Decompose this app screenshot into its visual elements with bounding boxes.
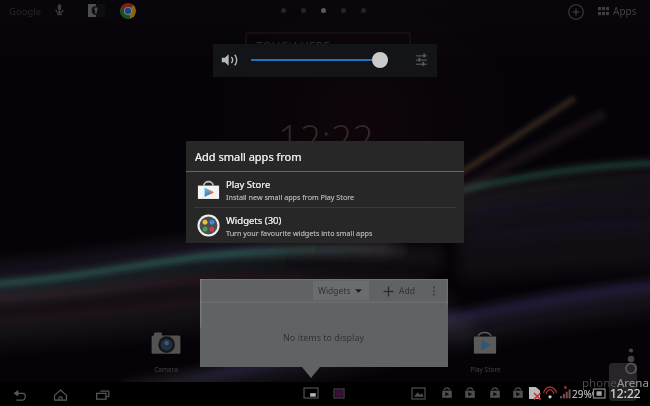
staticText: Add [399,285,415,297]
staticText: Google [9,5,42,18]
button[interactable]: Add [568,4,584,20]
button[interactable]: Google [9,0,42,22]
staticText: Camera [154,365,178,374]
button[interactable]: Widgets [313,281,369,300]
staticText: Apps [613,4,637,18]
staticText: No items to display [283,331,365,343]
button[interactable]: Sound settings [414,52,429,67]
button[interactable]: Volume [221,52,237,68]
staticText: Widgets [318,285,351,297]
staticText: Install new small apps from Play Store [226,192,355,202]
button[interactable]: Goggles [88,4,105,17]
staticText: Play Store [226,178,271,191]
button[interactable]: Widgets (30) [186,208,464,243]
button[interactable]: Camera [150,332,182,374]
button[interactable]: Volume level [372,52,388,68]
button[interactable]: Recent apps [96,388,110,402]
button[interactable]: Play Store [186,172,464,207]
button[interactable]: Play Store [469,332,501,374]
button[interactable]: Home [53,387,68,402]
staticText: Arena [617,375,649,391]
button[interactable]: Apps [598,0,637,22]
staticText: Turn your favourite widgets into small a… [226,228,373,238]
button[interactable]: Small apps [304,388,318,398]
staticText: 12:22 [610,385,641,401]
button[interactable]: Chrome [120,3,136,19]
staticText: Widgets (30) [226,214,282,227]
button[interactable]: More options [428,285,440,297]
staticText: Add small apps from [195,149,302,164]
staticText: Play Store [470,365,501,374]
staticText: TOUCH HERE [256,38,330,54]
staticText: phone [582,375,617,391]
staticText: 12:22 [278,112,375,164]
button[interactable]: Voice search [53,3,66,16]
button[interactable]: Back [12,387,27,402]
staticText: 29% [572,387,592,401]
button[interactable]: Widget [334,389,344,398]
button[interactable]: Add [383,285,415,297]
